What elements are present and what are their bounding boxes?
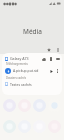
button[interactable]: Trier <box>49 57 53 61</box>
staticText: A.pickup.put.sid <box>13 68 39 73</box>
button[interactable]: Lire <box>48 68 54 74</box>
button[interactable]: Options <box>55 68 60 73</box>
button[interactable]: Menu <box>55 56 60 61</box>
staticText: Téléchargements <box>6 62 28 66</box>
button[interactable]: Sauvegarder <box>41 56 47 62</box>
button[interactable]: Application 5 <box>3 120 16 133</box>
button[interactable]: Application 6 <box>18 120 31 133</box>
staticText: Textes cachés <box>10 82 32 87</box>
button[interactable]: Application 2 <box>18 99 31 112</box>
button[interactable]: Plus d'options <box>55 47 61 53</box>
button[interactable]: Application 3 <box>33 99 46 112</box>
button[interactable]: Application 8 <box>48 120 61 133</box>
button[interactable]: Application 4 <box>48 99 61 112</box>
button[interactable]: Application 1 <box>3 99 16 112</box>
button[interactable]: Favori <box>46 47 52 53</box>
button[interactable]: Textes cachés <box>2 80 62 88</box>
staticText: Média <box>23 27 42 35</box>
button[interactable]: A.pickup.put.sid <box>2 66 62 75</box>
staticText: Dossiers cachés <box>6 76 27 80</box>
staticText: Galaxy A73 <box>10 56 29 61</box>
button[interactable]: Galaxy A73 <box>2 55 62 62</box>
